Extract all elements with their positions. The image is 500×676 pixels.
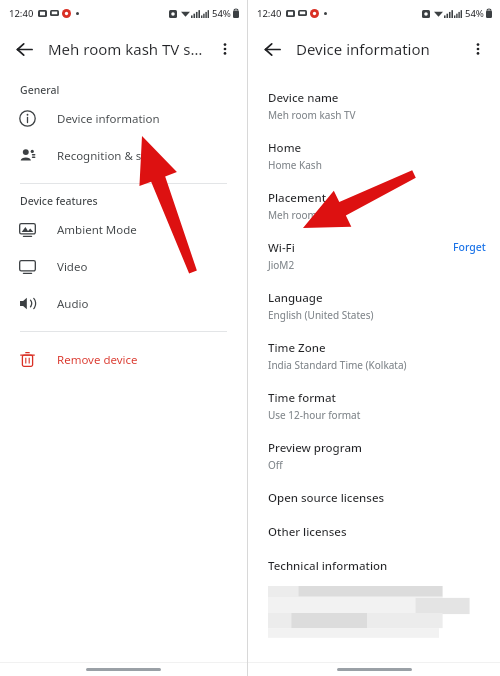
staticText: Meh room kash TV setti…: [48, 39, 208, 59]
staticText: Placement: [268, 190, 327, 206]
staticText: English (United States): [268, 308, 374, 322]
staticText: 54%: [465, 7, 484, 20]
staticText: Home: [268, 140, 302, 156]
button[interactable]: Home: [248, 131, 500, 181]
staticText: Open source licenses: [268, 490, 385, 506]
staticText: Other licenses: [268, 524, 347, 540]
staticText: JioM2: [268, 258, 295, 272]
button[interactable]: More options: [208, 32, 242, 66]
button[interactable]: Ambient Mode: [0, 211, 247, 248]
staticText: Ambient Mode: [57, 222, 137, 238]
staticText: Audio: [57, 296, 89, 312]
staticText: Time format: [268, 390, 336, 406]
button[interactable]: More options: [461, 32, 495, 66]
staticText: Recognition & sha: [57, 148, 155, 164]
staticText: Preview program: [268, 440, 362, 456]
staticText: Language: [268, 290, 323, 306]
staticText: Device information: [57, 111, 160, 127]
button[interactable]: Placement: [248, 181, 500, 231]
staticText: Device information: [296, 39, 461, 59]
button[interactable]: Device name: [248, 81, 500, 131]
button[interactable]: Other licenses: [248, 515, 500, 549]
staticText: Device features: [20, 194, 98, 208]
staticText: Remove device: [57, 352, 138, 368]
staticText: Time Zone: [268, 340, 326, 356]
staticText: India Standard Time (Kolkata): [268, 358, 407, 372]
button[interactable]: Device information: [0, 100, 247, 137]
staticText: Off: [268, 458, 283, 472]
button[interactable]: Technical information: [248, 549, 500, 585]
button[interactable]: Audio: [0, 285, 247, 322]
button[interactable]: Preview program: [248, 431, 500, 481]
staticText: Home Kash: [268, 158, 322, 172]
button[interactable]: Wi-Fi: [248, 231, 500, 281]
staticText: General: [20, 83, 60, 97]
staticText: Video: [57, 259, 88, 275]
button[interactable]: Back: [6, 31, 42, 67]
button[interactable]: Back: [254, 31, 290, 67]
staticText: Meh room kash TV: [268, 108, 356, 122]
button[interactable]: Recognition & sha: [0, 137, 247, 174]
staticText: Technical information: [268, 558, 388, 574]
staticText: Device name: [268, 90, 339, 106]
button[interactable]: Video: [0, 248, 247, 285]
staticText: 12:40: [257, 7, 282, 20]
staticText: 12:40: [9, 7, 34, 20]
staticText: Wi-Fi: [268, 240, 295, 256]
button[interactable]: Forget: [453, 240, 486, 254]
button[interactable]: Language: [248, 281, 500, 331]
staticText: Use 12-hour format: [268, 408, 361, 422]
staticText: Meh room kash: [268, 208, 342, 222]
button[interactable]: Remove device: [0, 341, 247, 378]
button[interactable]: Time Zone: [248, 331, 500, 381]
button[interactable]: Time format: [248, 381, 500, 431]
staticText: 54%: [212, 7, 231, 20]
button[interactable]: Open source licenses: [248, 481, 500, 515]
